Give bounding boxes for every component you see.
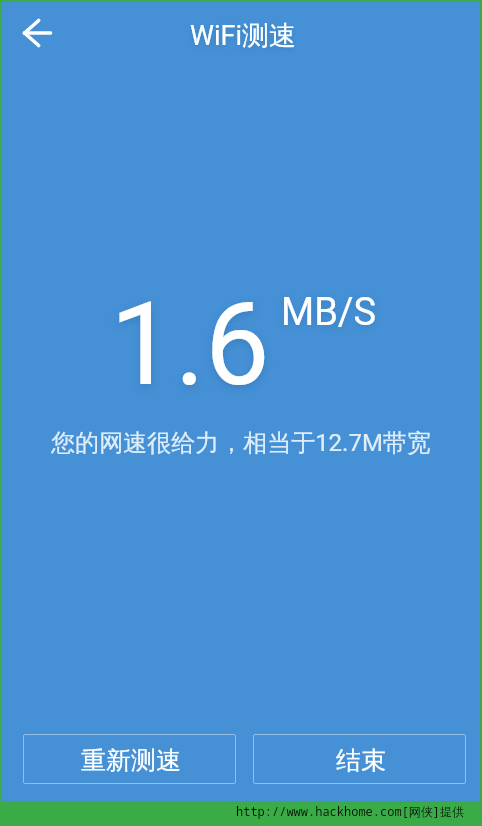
staticText: 1.6 <box>110 277 270 412</box>
button[interactable]: Back <box>13 9 61 57</box>
staticText: 重新测速 <box>81 745 181 776</box>
staticText: 您的网速很给力，相当于12.7M带宽 <box>51 428 431 458</box>
staticText: WiFi测速 <box>190 19 297 53</box>
staticText: 结束 <box>336 745 386 776</box>
staticText: MB/S <box>281 290 377 335</box>
staticText: http://www.hackhome.com[网侠]提供 <box>236 803 465 819</box>
button[interactable]: 重新测速 <box>23 734 236 784</box>
button[interactable]: 结束 <box>253 734 466 784</box>
